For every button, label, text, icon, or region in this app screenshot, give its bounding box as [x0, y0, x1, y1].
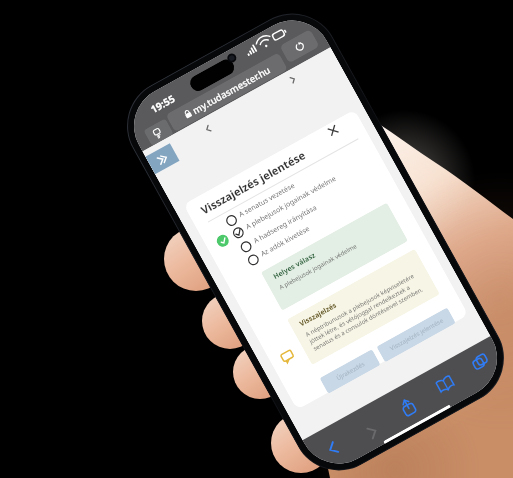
button[interactable]: my.tudasmester.hu: [165, 52, 288, 132]
button[interactable]: Share: [390, 389, 425, 425]
button[interactable]: A hadsereg irányítása: [237, 201, 320, 256]
button[interactable]: A plebejusok jogainak védelme: [229, 172, 339, 242]
button[interactable]: Back: [315, 431, 350, 466]
button[interactable]: Close: [321, 118, 345, 143]
staticText: A plebejusok jogainak védelme: [278, 242, 359, 292]
staticText: Visszajelzés jelentése: [198, 147, 308, 217]
button[interactable]: Bookmarks: [427, 366, 463, 402]
staticText: A hadsereg irányítása: [252, 203, 319, 246]
staticText: Helyes válasz: [272, 250, 318, 282]
staticText: Visszajelzés: [298, 300, 338, 329]
button[interactable]: Next: [280, 68, 305, 92]
button[interactable]: Reload: [279, 29, 320, 63]
button[interactable]: A senatus vezetése: [222, 179, 298, 229]
button[interactable]: Visszajelzés: [287, 249, 440, 365]
button[interactable]: Visszajelzés jelentése: [376, 307, 456, 362]
staticText: Visszajelzés jelentése: [388, 317, 445, 353]
button[interactable]: Helyes válasz: [261, 202, 408, 311]
staticText: A néptribunusok a plebejusok képviseleté…: [304, 270, 428, 353]
staticText: A senatus vezetése: [237, 180, 297, 220]
button[interactable]: Tabs: [463, 344, 498, 379]
button[interactable]: Reader view: [143, 118, 174, 146]
staticText: A plebejusok jogainak védelme: [244, 174, 338, 232]
button[interactable]: Az adók kivetése: [244, 222, 313, 269]
staticText: 19:55: [148, 91, 177, 116]
staticText: my.tudasmester.hu: [190, 63, 273, 117]
button[interactable]: Expand sidebar: [145, 143, 180, 174]
button[interactable]: Previous: [195, 117, 220, 141]
staticText: Újrakezdés: [335, 360, 366, 382]
button[interactable]: Forward: [355, 415, 390, 450]
staticText: Az adók kivetése: [259, 224, 312, 259]
button[interactable]: Újrakezdés: [319, 349, 381, 394]
